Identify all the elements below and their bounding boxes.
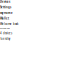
staticText: Wallet	[0, 17, 9, 20]
staticText: Tuesday	[0, 37, 10, 40]
staticText: Good morning	[0, 28, 10, 29]
staticText: My Home	[0, 11, 13, 15]
staticText: 4 devices	[0, 31, 12, 35]
staticText: Devices	[0, 0, 10, 3]
staticText: Settings	[0, 5, 11, 9]
staticText: Welcome back	[0, 22, 18, 26]
